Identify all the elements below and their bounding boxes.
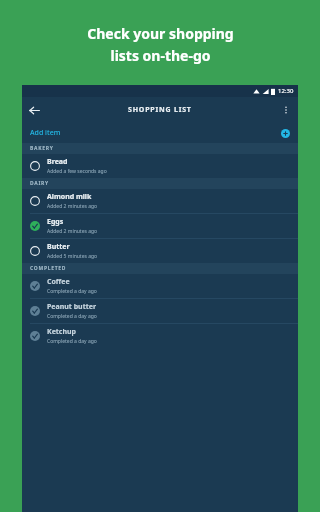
staticText: Eggs [47, 217, 64, 227]
button[interactable]: Back [22, 98, 46, 122]
staticText: Check your shopping [87, 24, 234, 43]
staticText: Peanut butter [47, 302, 97, 312]
staticText: Bread [47, 157, 68, 167]
button[interactable]: Eggs [22, 214, 298, 238]
staticText: BAKERY [30, 145, 54, 152]
button[interactable]: Add item [22, 123, 298, 143]
button[interactable]: Almond milk [22, 189, 298, 213]
staticText: Ketchup [47, 327, 77, 337]
button[interactable]: More options [274, 98, 298, 122]
button[interactable]: Bread [22, 154, 298, 178]
staticText: Completed a day ago [47, 313, 97, 320]
button[interactable]: Peanut butter [22, 299, 298, 323]
staticText: Added a few seconds ago [47, 168, 107, 175]
staticText: Completed a day ago [47, 288, 97, 295]
staticText: COMPLETED [30, 265, 67, 272]
staticText: Added 5 minutes ago [47, 253, 98, 260]
staticText: Add item [30, 128, 61, 138]
staticText: Added 2 minutes ago [47, 203, 98, 210]
staticText: 12:30 [278, 87, 294, 95]
staticText: Almond milk [47, 192, 92, 202]
staticText: DAIRY [30, 180, 49, 187]
staticText: Added 2 minutes ago [47, 228, 98, 235]
button[interactable]: Coffee [22, 274, 298, 298]
staticText: lists on-the-go [110, 46, 211, 65]
button[interactable]: Butter [22, 239, 298, 263]
staticText: Coffee [47, 277, 70, 287]
button[interactable]: Ketchup [22, 324, 298, 348]
staticText: Butter [47, 242, 70, 252]
other: Add [281, 129, 290, 138]
staticText: SHOPPING LIST [128, 105, 192, 115]
staticText: Completed a day ago [47, 338, 97, 345]
